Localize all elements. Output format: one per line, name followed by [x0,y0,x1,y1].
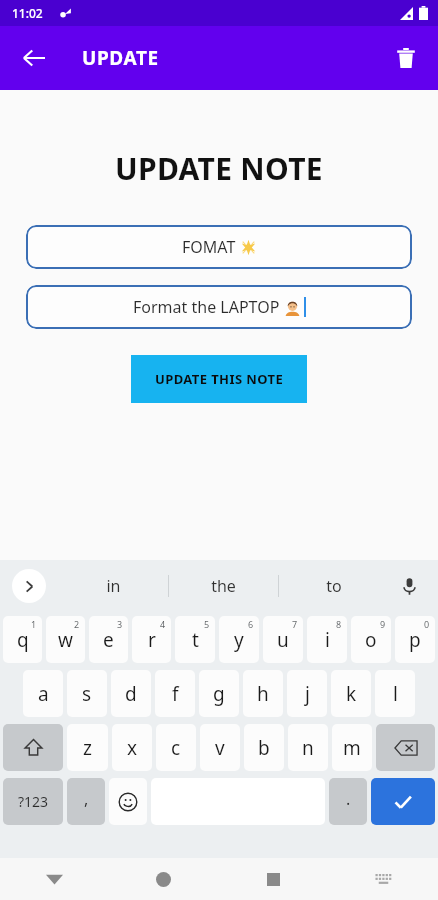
button[interactable]: Hide keyboard [0,858,109,900]
staticText: w [58,627,73,653]
staticText: UPDATE [82,45,159,71]
button[interactable]: u [263,616,303,663]
button[interactable]: Back [12,36,56,80]
button[interactable]: o [351,616,391,663]
button[interactable]: k [331,670,371,717]
staticText: the [211,575,236,597]
button[interactable]: Format the LAPTOP [26,285,412,329]
button[interactable]: g [199,670,239,717]
button[interactable]: a [23,670,63,717]
button[interactable]: FOMAT [26,225,412,269]
staticText: l [393,681,398,707]
staticText: 7 [292,618,298,630]
staticText: 2 [74,618,80,630]
button[interactable]: Voice input [392,569,426,603]
button[interactable]: t [175,616,215,663]
button[interactable]: Emoji [109,778,147,825]
staticText: e [103,627,114,653]
staticText: in [106,575,121,597]
staticText: i [325,627,330,653]
button[interactable]: h [243,670,283,717]
staticText: UPDATE NOTE [115,148,323,189]
staticText: u [277,627,289,653]
staticText: o [365,627,377,653]
staticText: to [326,575,342,597]
staticText: r [148,627,156,653]
staticText: b [258,735,270,761]
button[interactable]: Backspace [376,724,435,771]
staticText: q [17,627,29,653]
button[interactable]: Switch keyboard [328,858,438,900]
staticText: a [38,681,49,707]
button[interactable]: w [46,616,85,663]
staticText: f [172,681,179,707]
staticText: v [215,735,225,761]
button[interactable]: x [112,724,152,771]
button[interactable]: the [169,566,278,606]
staticText: m [343,735,361,761]
staticText: 3 [117,618,123,630]
button[interactable]: n [288,724,328,771]
button[interactable]: m [332,724,372,771]
staticText: j [305,681,310,707]
staticText: z [83,735,92,761]
staticText: ?123 [18,792,49,811]
staticText: d [125,681,137,707]
button[interactable]: Home [109,858,218,900]
button[interactable]: Enter [371,778,435,825]
staticText: 11:02 [12,5,43,21]
button[interactable]: f [155,670,195,717]
staticText: g [213,681,225,707]
button[interactable]: Delete [384,36,428,80]
button[interactable]: s [67,670,107,717]
button[interactable]: to [279,566,388,606]
staticText: s [82,681,92,707]
staticText: UPDATE THIS NOTE [155,370,284,388]
button[interactable]: in [58,566,168,606]
staticText: h [257,681,269,707]
staticText: 4 [160,618,166,630]
button[interactable]: p [395,616,435,663]
staticText: 5 [204,618,210,630]
button[interactable]: i [307,616,347,663]
staticText: FOMAT [182,236,240,258]
button[interactable]: z [67,724,108,771]
staticText: , [84,788,89,810]
staticText: 1 [31,618,37,630]
staticText: n [302,735,314,761]
button[interactable]: ?123 [3,778,63,825]
button[interactable]: l [375,670,415,717]
button[interactable]: e [89,616,128,663]
staticText: c [171,735,181,761]
staticText: 6 [248,618,254,630]
button[interactable]: c [156,724,196,771]
button[interactable]: y [219,616,259,663]
button[interactable]: v [200,724,240,771]
button[interactable]: More suggestions [12,569,46,603]
staticText: t [192,627,199,653]
staticText: 9 [380,618,386,630]
staticText: Format the LAPTOP [133,296,284,318]
button[interactable]: d [111,670,151,717]
staticText: x [127,735,138,761]
staticText: 0 [424,618,430,630]
button[interactable]: r [132,616,171,663]
staticText: 8 [336,618,342,630]
button[interactable]: q [3,616,42,663]
button[interactable]: Recents [218,858,328,900]
button[interactable]: Shift [3,724,63,771]
staticText: p [409,627,421,653]
button[interactable]: UPDATE THIS NOTE [131,355,307,403]
staticText: y [234,627,244,653]
button[interactable]: b [244,724,284,771]
button[interactable]: . [329,778,367,825]
staticText: . [346,788,351,810]
staticText: k [346,681,357,707]
button[interactable]: , [67,778,105,825]
button[interactable]: j [287,670,327,717]
